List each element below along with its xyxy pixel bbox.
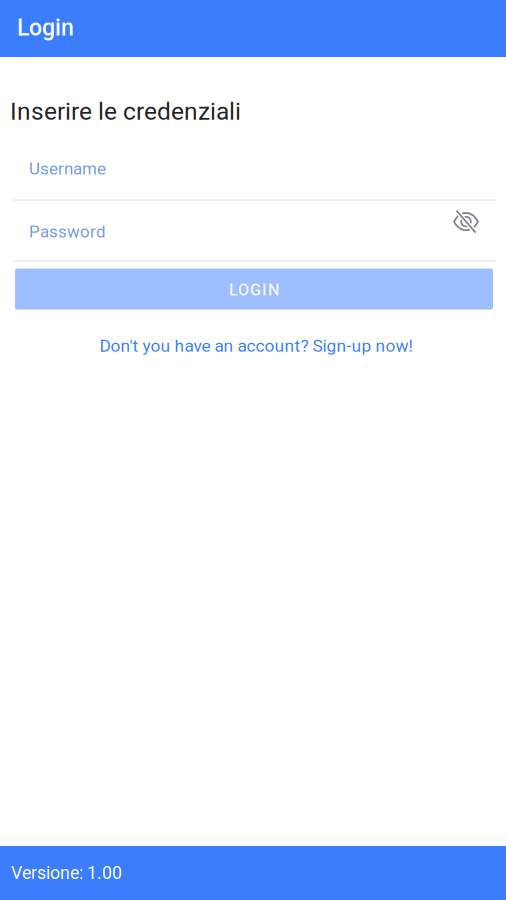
button[interactable]: Username <box>0 139 506 200</box>
staticText: Versione: 1.00 <box>11 863 122 883</box>
staticText: Don't you have an account? Sign-up now! <box>99 336 412 356</box>
staticText: Login <box>17 14 74 41</box>
button[interactable]: Password <box>0 201 506 261</box>
button[interactable]: Don't you have an account? Sign-up now! <box>99 326 412 366</box>
staticText: LOGIN <box>229 281 279 299</box>
staticText: Inserire le credenziali <box>10 97 241 126</box>
staticText: Password <box>29 222 106 241</box>
button[interactable]: Show password <box>452 219 478 245</box>
button[interactable]: LOGIN <box>15 269 493 310</box>
staticText: Username <box>29 159 106 179</box>
